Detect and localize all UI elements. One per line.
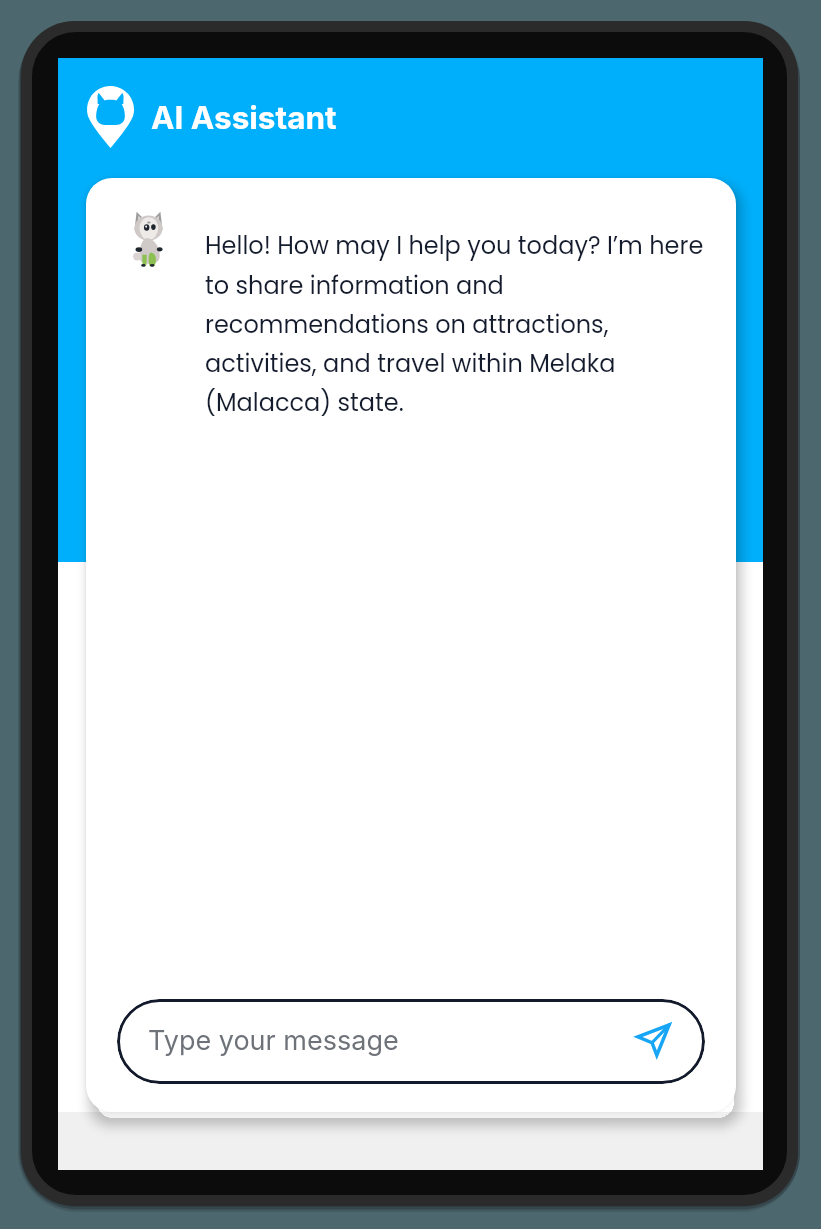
button[interactable]: Send message [625, 1012, 681, 1068]
staticText: Type your message [148, 1024, 399, 1057]
staticText: Hello! How may I help you today? I’m her… [205, 229, 715, 419]
staticText: AI Assistant [151, 98, 337, 136]
button[interactable]: AI Assistant [87, 86, 337, 148]
button[interactable]: Type your message [117, 999, 705, 1084]
